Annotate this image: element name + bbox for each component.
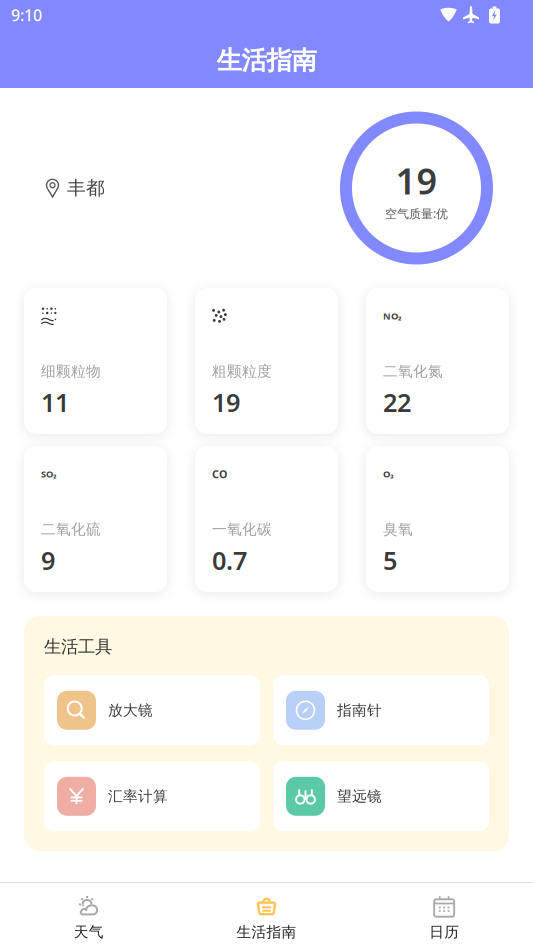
button[interactable]: NO₂ [366, 288, 509, 434]
staticText: 天气 [74, 923, 104, 941]
staticText: CO [212, 467, 227, 481]
staticText: SO₂ [41, 468, 57, 480]
staticText: O₃ [383, 468, 394, 480]
button[interactable]: 汇率计算 [44, 761, 260, 831]
button[interactable]: 细颗粒物 [24, 288, 167, 434]
staticText: 日历 [429, 923, 459, 941]
staticText: 丰都 [67, 176, 105, 199]
staticText: 0.7 [212, 543, 247, 577]
staticText: 一氧化碳 [212, 520, 272, 538]
staticText: 生活指南 [216, 45, 316, 76]
staticText: NO₂ [383, 310, 402, 322]
staticText: 5 [383, 543, 397, 577]
staticText: 二氧化硫 [41, 520, 101, 538]
button[interactable]: 天气 [0, 883, 178, 948]
button[interactable]: 日历 [355, 883, 533, 948]
staticText: 19 [212, 385, 240, 419]
staticText: 19 [395, 157, 437, 204]
staticText: 空气质量:优 [385, 205, 448, 221]
button[interactable]: O₃ [366, 446, 509, 592]
button[interactable]: 望远镜 [273, 761, 489, 831]
staticText: 粗颗粒度 [212, 362, 272, 380]
staticText: 指南针 [337, 701, 382, 719]
staticText: 11 [41, 385, 69, 419]
button[interactable]: 粗颗粒度 [195, 288, 338, 434]
staticText: 22 [383, 385, 411, 419]
button[interactable]: 放大镜 [44, 675, 260, 745]
staticText: 臭氧 [383, 520, 413, 538]
staticText: 生活指南 [236, 923, 296, 941]
button[interactable]: CO [195, 446, 338, 592]
staticText: 望远镜 [337, 787, 382, 805]
staticText: 二氧化氮 [383, 362, 443, 380]
staticText: 细颗粒物 [41, 362, 101, 380]
staticText: 9 [41, 543, 55, 577]
staticText: 9:10 [11, 4, 42, 26]
staticText: 生活工具 [44, 636, 112, 657]
button[interactable]: SO₂ [24, 446, 167, 592]
button[interactable]: 生活指南 [178, 883, 355, 948]
staticText: 汇率计算 [108, 787, 168, 805]
staticText: 放大镜 [108, 701, 153, 719]
button[interactable]: 指南针 [273, 675, 489, 745]
